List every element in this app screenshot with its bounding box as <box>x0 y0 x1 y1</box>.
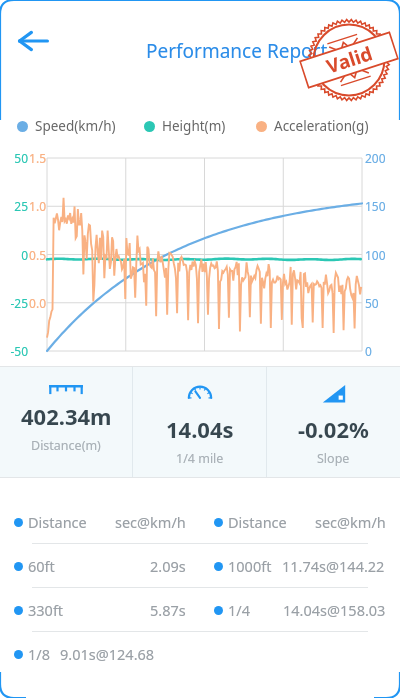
staticText: Distance <box>228 512 287 532</box>
staticText: 100 <box>365 247 386 263</box>
staticText: Performance Report <box>146 38 328 64</box>
other: Slope <box>320 380 348 408</box>
button[interactable]: Time <box>133 367 266 477</box>
staticText: -0.02% <box>298 414 369 444</box>
staticText: 25 <box>2 198 28 214</box>
button[interactable]: Back <box>10 18 56 64</box>
staticText: 1.0 <box>24 198 46 214</box>
staticText: Distance(m) <box>31 437 101 454</box>
staticText: Height(m) <box>162 117 226 135</box>
staticText: sec@km/h <box>315 512 386 532</box>
staticText: 14.04s@158.03 <box>283 600 386 620</box>
staticText: 11.74s@144.22 <box>282 556 385 576</box>
staticText: 0.5 <box>24 247 46 263</box>
staticText: 2.09s <box>150 556 186 576</box>
staticText: -50 <box>2 343 28 359</box>
staticText: 14.04s <box>166 414 234 444</box>
staticText: 0 <box>365 343 372 359</box>
other: Time <box>186 380 214 408</box>
other: Distance <box>49 380 83 395</box>
staticText: 330ft <box>28 600 64 620</box>
staticText: Valid <box>323 40 376 79</box>
staticText: 50 <box>365 295 379 311</box>
staticText: 0 <box>2 247 28 263</box>
staticText: -25 <box>2 295 28 311</box>
button[interactable]: Distance <box>0 500 400 543</box>
staticText: Slope <box>317 450 350 467</box>
staticText: 50 <box>2 150 28 166</box>
staticText: 402.34m <box>21 401 112 431</box>
staticText: 60ft <box>28 556 55 576</box>
staticText: Acceleration(g) <box>274 117 369 135</box>
staticText: 1.5 <box>24 150 46 166</box>
button[interactable]: Slope <box>267 367 400 477</box>
staticText: 1000ft <box>228 556 272 576</box>
staticText: 1/4 mile <box>176 450 224 467</box>
staticText: 150 <box>365 198 386 214</box>
button[interactable]: 60ft <box>0 544 400 587</box>
staticText: 9.01s@124.68 <box>60 644 155 664</box>
staticText: 1/4 <box>228 600 250 620</box>
button[interactable]: Distance <box>0 367 132 477</box>
staticText: 200 <box>365 150 386 166</box>
staticText: 1/8 <box>28 644 50 664</box>
button[interactable]: 330ft <box>0 588 400 631</box>
button[interactable]: 1/8 <box>0 632 400 675</box>
staticText: Distance <box>28 512 87 532</box>
staticText: 0.0 <box>24 295 46 311</box>
staticText: 5.87s <box>150 600 186 620</box>
staticText: sec@km/h <box>115 512 186 532</box>
staticText: Speed(km/h) <box>35 117 116 135</box>
